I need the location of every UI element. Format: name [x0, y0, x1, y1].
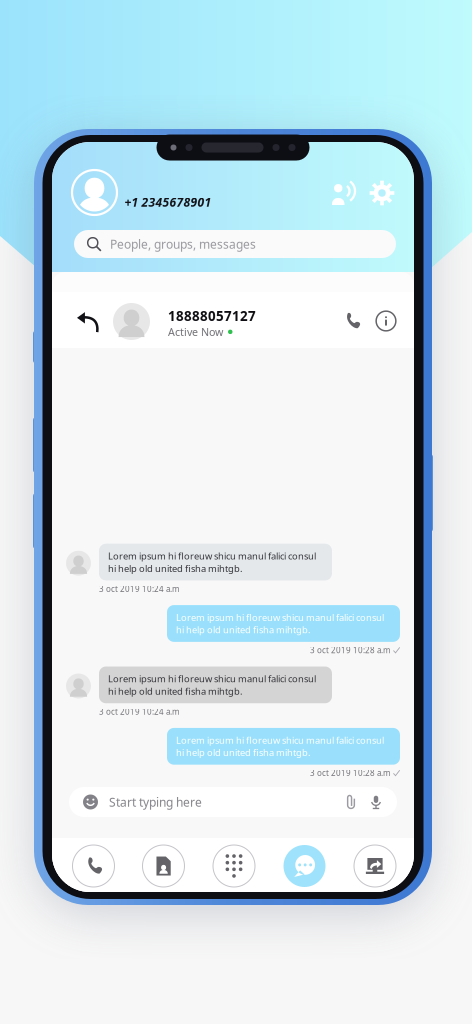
staticText: Lorem ipsum hi floreuw shicu manul falic… [108, 550, 316, 574]
staticText: +1 2345678901 [124, 194, 211, 210]
button[interactable]: People, groups, messages [74, 230, 396, 258]
button[interactable]: Start typing here [69, 787, 397, 817]
button[interactable]: Call [340, 309, 364, 333]
button[interactable]: Back [74, 308, 102, 336]
staticText: 3 oct 2019 10:24 a.m [99, 583, 179, 594]
button[interactable]: Share screen [354, 845, 396, 887]
button[interactable]: Conversation info [374, 309, 398, 333]
staticText: 3 oct 2019 10:28 a.m [310, 645, 390, 655]
button[interactable]: Broadcast [330, 179, 358, 207]
staticText: Lorem ipsum hi floreuw shicu manul falic… [108, 672, 316, 697]
button[interactable]: Calls [72, 845, 114, 887]
button[interactable]: Keypad [213, 845, 255, 887]
staticText: 18888057127 [168, 307, 256, 325]
staticText: People, groups, messages [110, 236, 256, 252]
button[interactable]: Messages [283, 845, 325, 887]
staticText: Start typing here [109, 794, 202, 810]
staticText: Active Now [168, 325, 223, 339]
staticText: Lorem ipsum hi floreuw shicu manul falic… [176, 611, 384, 636]
staticText: Lorem ipsum hi floreuw shicu manul falic… [176, 734, 384, 759]
button[interactable]: Settings [368, 179, 396, 207]
staticText: 3 oct 2019 10:28 a.m [310, 768, 390, 778]
button[interactable]: Contacts [142, 845, 184, 887]
staticText: 3 oct 2019 10:24 a.m [99, 706, 179, 717]
